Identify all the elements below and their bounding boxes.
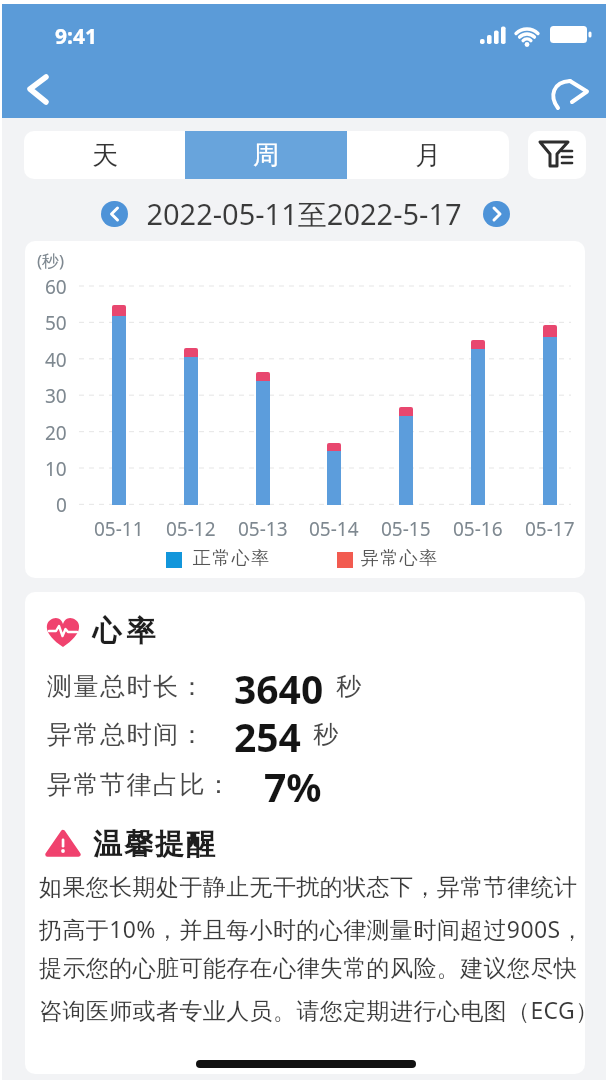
staticText: 咨询医师或者专业人员。请您定期进行心电图（ECG） xyxy=(39,994,585,1025)
staticText: 20 xyxy=(45,420,67,444)
staticText: 月 xyxy=(415,139,441,172)
button[interactable] xyxy=(528,131,586,179)
staticText: 50 xyxy=(45,310,67,334)
staticText: 3640 xyxy=(234,662,324,710)
staticText: 05-14 xyxy=(309,516,359,538)
staticText: 254 xyxy=(234,710,301,758)
staticText: 扔高于10%，并且每小时的心律测量时间超过900S， xyxy=(39,913,584,944)
button[interactable] xyxy=(483,201,510,227)
staticText: 05-11 xyxy=(94,516,144,538)
staticText: 如果您长期处于静止无干扰的状态下，异常节律统计 xyxy=(39,873,578,902)
staticText: 异常心率 xyxy=(360,547,438,570)
button[interactable]: 月 xyxy=(347,131,509,179)
staticText: 05-12 xyxy=(166,516,216,538)
staticText: 测量总时长： xyxy=(47,671,234,702)
staticText: 天 xyxy=(92,139,118,172)
staticText: 7% xyxy=(264,760,322,808)
staticText: 30 xyxy=(45,383,67,407)
staticText: 05-15 xyxy=(381,516,431,538)
button[interactable]: 周 xyxy=(185,131,347,179)
button[interactable]: 天 xyxy=(24,131,185,179)
staticText: 05-16 xyxy=(453,516,503,538)
staticText: 周 xyxy=(253,139,279,172)
staticText: 异常节律占比： xyxy=(47,769,264,800)
button[interactable] xyxy=(542,62,598,118)
staticText: 9:41 xyxy=(55,22,97,51)
staticText: 05-13 xyxy=(238,516,288,538)
staticText: 心率 xyxy=(90,613,158,650)
staticText: (秒) xyxy=(37,249,65,272)
staticText: 提示您的心脏可能存在心律失常的风险。建议您尽快 xyxy=(39,954,578,983)
staticText: 60 xyxy=(45,274,67,298)
staticText: 10 xyxy=(45,456,67,480)
staticText: 正常心率 xyxy=(192,547,270,570)
button[interactable] xyxy=(12,62,64,114)
staticText: 0 xyxy=(56,492,67,516)
staticText: 异常总时间： xyxy=(47,719,234,750)
staticText: 秒 xyxy=(336,671,361,702)
staticText: 40 xyxy=(45,347,67,371)
staticText: 秒 xyxy=(313,719,338,750)
staticText: 温馨提醒 xyxy=(92,826,216,863)
staticText: 05-17 xyxy=(525,516,575,538)
button[interactable] xyxy=(101,201,128,227)
staticText: 2022-05-11至2022-5-17 xyxy=(0,194,608,234)
